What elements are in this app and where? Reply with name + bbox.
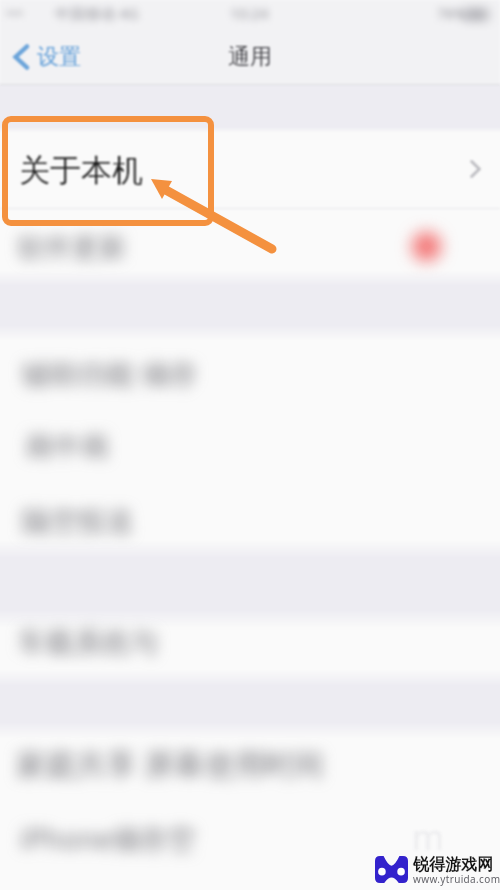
other: Back (13, 45, 29, 69)
staticText: 78% (437, 3, 467, 23)
staticText: 家庭共享 屏幕使用时间 (16, 743, 324, 784)
staticText: 设置 (37, 43, 81, 71)
staticText: 辅助功能 储存 (22, 354, 198, 392)
staticText: 10:24 (230, 3, 269, 23)
staticText: 画中画 (25, 429, 109, 464)
staticText: 隔空投送 (22, 504, 134, 539)
staticText: 车载系统与 (18, 625, 158, 660)
staticText: m (412, 814, 444, 860)
staticText: iPhone储存空 (20, 819, 196, 857)
staticText: 关于本机 (19, 151, 143, 190)
button[interactable]: Back (0, 37, 85, 77)
staticText: www.ytruida.com (413, 872, 500, 886)
staticText: 锐得游戏网 (413, 855, 493, 875)
staticText: 软件更新 (18, 231, 126, 265)
staticText: 中国移动 4G (55, 3, 139, 23)
staticText: 通用 (228, 43, 272, 71)
button[interactable]: 关于本机 (0, 128, 500, 208)
staticText: ••• (6, 3, 23, 23)
